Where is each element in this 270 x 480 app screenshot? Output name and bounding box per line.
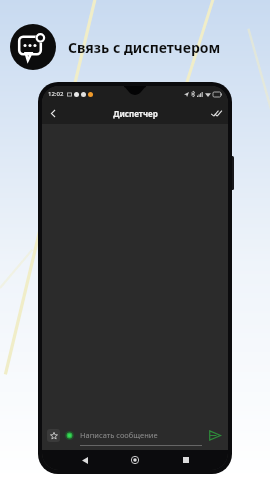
staticText: Связь с диспетчером [68,38,221,57]
button[interactable]: Написать сообщение [80,424,202,446]
button[interactable]: Attach [47,429,60,442]
button[interactable]: Mark as read [207,104,225,122]
staticText: Написать сообщение [80,430,158,440]
button[interactable]: Send [207,427,223,443]
staticText: Диспетчер [113,108,158,119]
button[interactable]: Связь с диспетчером [10,24,56,70]
staticText: 12:02 [48,90,64,98]
button[interactable]: Home [127,452,143,468]
button[interactable]: Back [77,452,93,468]
button[interactable]: Recents [178,452,194,468]
button[interactable]: Back [44,104,62,122]
